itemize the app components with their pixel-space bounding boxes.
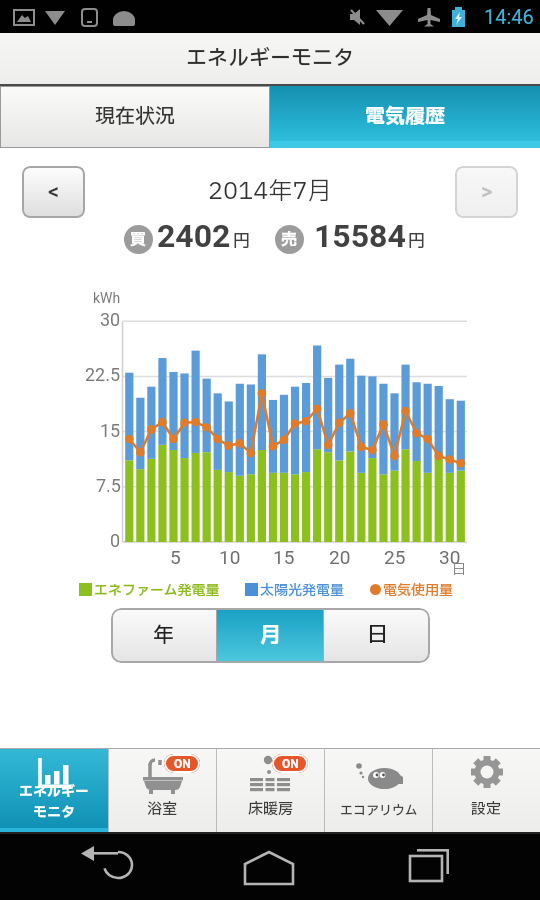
staticText: 電気使用量 [383, 580, 453, 601]
staticText: ON [174, 757, 191, 771]
button[interactable]: ON [217, 749, 324, 832]
staticText: kWh [93, 290, 121, 306]
button[interactable]: エネルギー [0, 749, 108, 832]
staticText: 15 [100, 420, 121, 441]
staticText: 円 [233, 229, 250, 254]
staticText: エネルギーモニタ [186, 43, 354, 74]
staticText: エネファーム発電量 [94, 580, 220, 601]
staticText: 5 [170, 546, 181, 568]
button[interactable]: 年 [111, 608, 216, 663]
staticText: ON [282, 757, 299, 771]
staticText: 20 [329, 546, 351, 568]
staticText: 14:46 [484, 5, 534, 28]
staticText: 買 [130, 228, 147, 252]
staticText: 床暖房 [248, 798, 294, 820]
staticText: 年 [153, 620, 174, 651]
button[interactable]: 月 [217, 608, 323, 663]
staticText: エコアリウム [340, 801, 418, 820]
button[interactable] [75, 838, 141, 894]
staticText: 設定 [471, 798, 502, 820]
button[interactable]: 日 [324, 608, 430, 663]
staticText: 2402 [157, 217, 231, 255]
staticText: 売 [281, 228, 298, 252]
button[interactable]: 電気履歴 [270, 86, 540, 148]
button[interactable]: エコアリウム [325, 749, 432, 832]
staticText: 日 [452, 559, 466, 580]
staticText: 太陽光発電量 [260, 580, 344, 601]
staticText: 7.5 [96, 475, 121, 496]
staticText: 浴室 [147, 798, 178, 820]
staticText: 2014年7月 [208, 174, 332, 210]
button[interactable]: 設定 [433, 749, 540, 832]
staticText: 日 [367, 620, 388, 651]
staticText: > [481, 179, 493, 205]
staticText: 30 [100, 309, 121, 330]
button[interactable]: 現在状況 [0, 86, 270, 148]
staticText: 22.5 [85, 364, 121, 385]
button[interactable]: < [22, 166, 85, 218]
staticText: 15 [273, 546, 295, 568]
staticText: 月 [260, 620, 281, 651]
staticText: < [48, 179, 60, 205]
button[interactable]: > [455, 166, 518, 218]
staticText: 25 [384, 546, 406, 568]
staticText: 10 [219, 546, 241, 568]
staticText: 30 [439, 546, 461, 568]
button[interactable] [399, 838, 465, 894]
staticText: 15584 [314, 217, 406, 255]
staticText: 円 [408, 229, 425, 254]
staticText: 0 [110, 530, 121, 551]
button[interactable] [237, 838, 303, 894]
staticText: エネルギー [19, 781, 89, 802]
staticText: 現在状況 [95, 102, 175, 132]
button[interactable]: ON [109, 749, 216, 832]
staticText: 電気履歴 [365, 102, 445, 132]
staticText: モニタ [33, 802, 75, 823]
